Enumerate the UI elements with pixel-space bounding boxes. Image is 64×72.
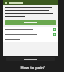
staticText: How to pair/ bbox=[20, 65, 45, 70]
button[interactable] bbox=[3, 0, 58, 5]
button[interactable]: Connect sensor bbox=[3, 32, 58, 37]
button[interactable] bbox=[3, 37, 58, 42]
button[interactable] bbox=[5, 20, 56, 25]
other: Connect sensor bbox=[53, 28, 56, 31]
button[interactable]: Connect sensor bbox=[3, 27, 58, 32]
button[interactable]: Continue bbox=[6, 57, 55, 61]
other: Connect sensor bbox=[53, 33, 56, 36]
